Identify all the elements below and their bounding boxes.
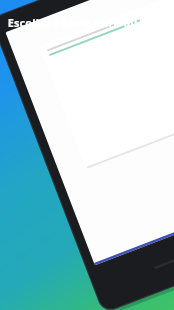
button[interactable]: Escolha o tema dark ou light — [6, 15, 168, 30]
staticText: Escolha o tema dark ou light — [6, 15, 168, 30]
button[interactable]: Pré-visualização do tema no telefone — [0, 0, 174, 310]
